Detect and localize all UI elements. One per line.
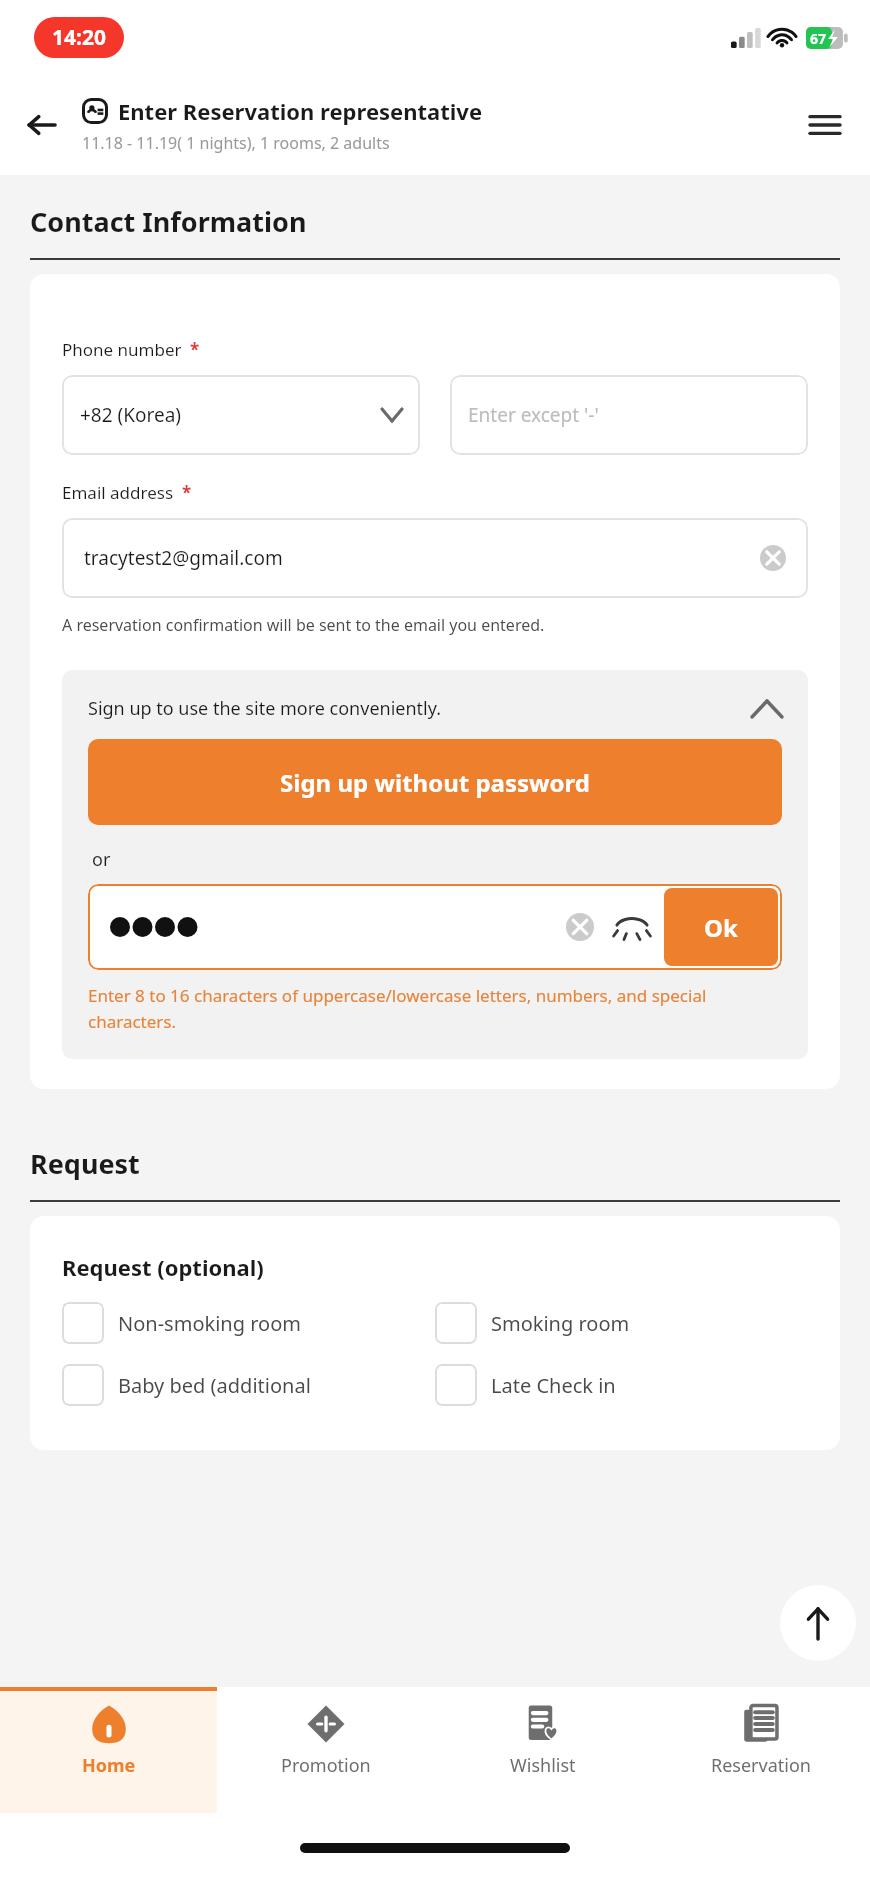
button[interactable]: Sign up to use the site more convenientl… — [88, 696, 782, 721]
staticText: Smoking room — [491, 1310, 630, 1337]
staticText: Promotion — [281, 1753, 371, 1778]
button[interactable]: Baby bed (additional — [62, 1360, 435, 1410]
button[interactable]: Back — [14, 98, 68, 152]
staticText: * — [190, 338, 200, 361]
staticText: Enter except '-' — [468, 402, 599, 428]
staticText: Wishlist — [510, 1753, 576, 1778]
staticText: +82 (Korea) — [80, 402, 182, 428]
staticText: Baby bed (additional — [118, 1372, 311, 1399]
staticText: Enter 8 to 16 characters of uppercase/lo… — [88, 984, 772, 1033]
staticText: Sign up to use the site more convenientl… — [88, 696, 442, 721]
staticText: 67 — [810, 29, 827, 48]
staticText: or — [92, 847, 111, 872]
staticText: A reservation confirmation will be sent … — [62, 614, 545, 636]
button[interactable]: Sign up without password — [88, 739, 782, 825]
button[interactable]: tracytest2@gmail.com — [62, 518, 808, 598]
button[interactable]: Home — [0, 1687, 217, 1813]
staticText: Non-smoking room — [118, 1310, 301, 1337]
staticText: Enter Reservation representative — [118, 96, 483, 126]
button[interactable]: +82 (Korea) — [62, 375, 420, 455]
staticText: Late Check in — [491, 1372, 616, 1399]
button[interactable]: Non-smoking room — [62, 1298, 435, 1348]
staticText: Request (optional) — [62, 1252, 264, 1282]
staticText: Sign up without password — [280, 766, 591, 799]
staticText: Email address — [62, 481, 174, 504]
button[interactable]: Late Check in — [435, 1360, 808, 1410]
button[interactable]: Promotion — [217, 1687, 434, 1813]
button[interactable]: Menu — [798, 98, 852, 152]
button[interactable]: Smoking room — [435, 1298, 808, 1348]
button[interactable]: Clear — [566, 913, 594, 941]
button[interactable]: Enter except '-' — [450, 375, 808, 455]
button[interactable]: Show password — [612, 912, 652, 942]
button[interactable]: Wishlist — [434, 1687, 652, 1813]
staticText: * — [182, 481, 192, 504]
staticText: Reservation — [711, 1753, 811, 1778]
staticText: Phone number — [62, 338, 182, 361]
staticText: 11.18 - 11.19( 1 nights), 1 rooms, 2 adu… — [82, 132, 390, 154]
staticText: 14:20 — [52, 23, 106, 52]
staticText: Home — [82, 1753, 136, 1778]
button[interactable]: Scroll to top — [780, 1585, 856, 1661]
button[interactable] — [88, 884, 566, 970]
button[interactable]: Clear — [760, 545, 786, 571]
button[interactable]: Reservation — [652, 1687, 870, 1813]
staticText: Request — [30, 1145, 140, 1182]
staticText: Contact Information — [30, 203, 307, 240]
button[interactable]: Ok — [664, 888, 778, 966]
staticText: Ok — [704, 911, 738, 944]
other: Collapse — [752, 701, 782, 717]
staticText: tracytest2@gmail.com — [84, 545, 760, 571]
